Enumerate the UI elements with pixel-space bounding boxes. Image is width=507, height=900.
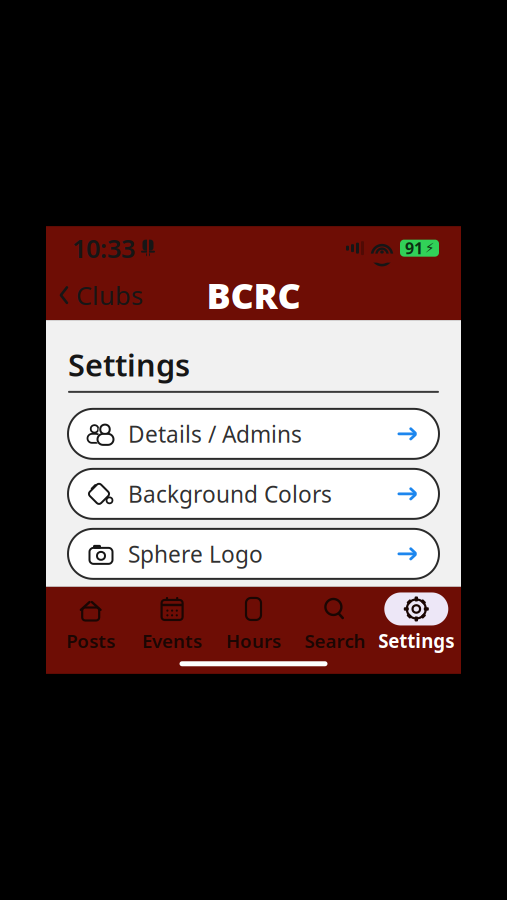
button[interactable]: Events — [131, 586, 213, 653]
staticText: Settings — [378, 628, 454, 653]
button[interactable]: Settings — [376, 586, 457, 653]
staticText: 91 — [405, 237, 423, 259]
button[interactable]: Search — [294, 586, 376, 653]
staticText: Search — [304, 628, 365, 653]
button[interactable]: Clubs — [46, 273, 155, 317]
button[interactable]: Posts — [50, 586, 131, 653]
staticText: Hours — [226, 628, 281, 653]
staticText: ⚡︎ — [425, 241, 434, 256]
staticText: Clubs — [76, 278, 143, 312]
staticText: BCRC — [206, 271, 300, 319]
button[interactable]: Background Colors — [68, 469, 439, 519]
button[interactable]: Sphere Logo — [68, 529, 439, 579]
staticText: Posts — [66, 628, 115, 653]
staticText: 10:33 — [72, 231, 135, 265]
staticText: Background Colors — [128, 479, 332, 509]
button[interactable]: Hours — [213, 586, 294, 653]
staticText: Details / Admins — [128, 419, 302, 449]
staticText: Events — [142, 628, 202, 653]
staticText: Sphere Logo — [128, 539, 263, 569]
button[interactable]: Details / Admins — [68, 409, 439, 459]
staticText: Settings — [68, 344, 190, 385]
